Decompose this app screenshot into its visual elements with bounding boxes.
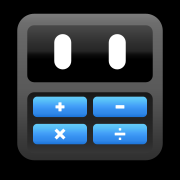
button[interactable]: Divide [93,124,147,144]
button[interactable]: Add [33,97,87,117]
button[interactable]: Multiply [33,124,87,144]
button[interactable]: Subtract [93,97,147,117]
